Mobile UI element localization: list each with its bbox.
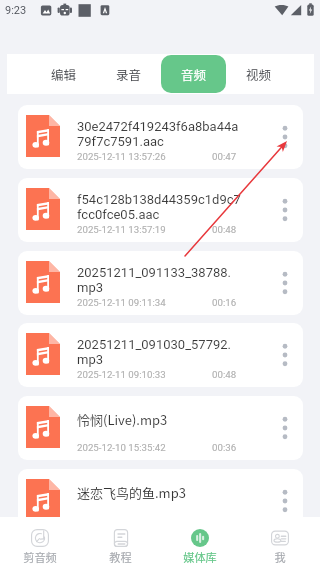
staticText: 2025-12-10 15:35:42	[77, 442, 166, 453]
button[interactable]: f54c128b138d44359c1d9c7 fcc0fce05.aac	[18, 178, 303, 242]
button[interactable]: 我	[240, 517, 320, 569]
staticText: 音频	[181, 65, 207, 83]
button[interactable]: 30e2472f419243f6a8ba44a 79f7c7591.aac	[18, 105, 303, 169]
button[interactable]: 20251211_091030_57792. mp3	[18, 323, 303, 387]
button[interactable]: More options	[270, 323, 300, 387]
staticText: 00:47	[212, 151, 237, 162]
staticText: 编辑	[51, 65, 77, 83]
staticText: 2025-12-11 09:10:33	[77, 369, 166, 380]
staticText: 2025-12-11 13:57:19	[77, 224, 166, 235]
button[interactable]: 媒体库	[160, 517, 240, 569]
button[interactable]: More options	[270, 105, 300, 169]
button[interactable]: 剪音频	[0, 517, 80, 569]
staticText: 怜悯(Live).mp3	[77, 410, 252, 429]
staticText: 剪音频	[23, 549, 57, 565]
button[interactable]: 怜悯(Live).mp3	[18, 396, 303, 460]
staticText: 2025-12-11 13:57:26	[77, 151, 166, 162]
staticText: 00:16	[212, 297, 237, 308]
staticText: 9:23	[5, 4, 27, 17]
button[interactable]: More options	[270, 251, 300, 315]
staticText: 00:48	[212, 369, 237, 380]
staticText: 录音	[116, 65, 142, 83]
button[interactable]: More options	[270, 396, 300, 460]
staticText: 20251211_091133_38788. mp3	[77, 265, 252, 295]
button[interactable]: 录音	[96, 55, 161, 93]
staticText: 教程	[109, 549, 132, 565]
button[interactable]: 音频	[161, 55, 226, 93]
button[interactable]: 20251211_091133_38788. mp3	[18, 251, 303, 315]
staticText: 20251211_091030_57792. mp3	[77, 337, 252, 367]
button[interactable]: 视频	[226, 55, 291, 93]
button[interactable]: More options	[270, 178, 300, 242]
staticText: 媒体库	[183, 549, 217, 565]
button[interactable]: 编辑	[32, 55, 96, 93]
staticText: 视频	[246, 65, 272, 83]
button[interactable]: 迷恋飞鸟的鱼.mp3	[18, 469, 303, 533]
staticText: 00:48	[212, 224, 237, 235]
staticText: f54c128b138d44359c1d9c7 fcc0fce05.aac	[77, 192, 252, 222]
staticText: 30e2472f419243f6a8ba44a 79f7c7591.aac	[77, 119, 252, 149]
staticText: 迷恋飞鸟的鱼.mp3	[77, 483, 252, 502]
staticText: 2025-12-11 09:11:34	[77, 297, 166, 308]
button[interactable]: 教程	[80, 517, 160, 569]
staticText: 00:36	[212, 442, 237, 453]
button[interactable]: More options	[270, 469, 300, 533]
staticText: 我	[274, 549, 286, 565]
